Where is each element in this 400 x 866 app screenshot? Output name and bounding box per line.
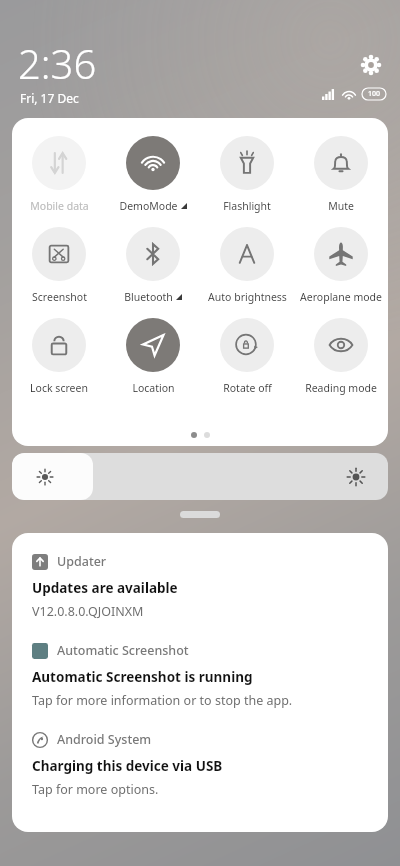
staticText: Updater [57,553,107,570]
staticText: Android System [57,731,152,748]
staticText: 2:36 [18,36,97,90]
button[interactable]: Mute [294,136,388,213]
staticText: Reading mode [305,381,377,395]
button[interactable]: Android System [12,709,388,798]
button[interactable]: Flashlight [200,136,294,213]
button[interactable]: Lock screen [12,318,106,395]
staticText: DemoMode [119,199,178,213]
button[interactable]: Reading mode [294,318,388,395]
staticText: Automatic Screenshot is running [32,668,253,686]
staticText: Flashlight [223,199,271,213]
button[interactable]: Rotate off [200,318,294,395]
staticText: Tap for more options. [32,781,159,798]
staticText: Screenshot [32,290,87,304]
staticText: 100 [368,89,381,99]
staticText: V12.0.8.0.QJOINXM [32,603,144,620]
button[interactable]: Settings [356,50,386,80]
button[interactable]: Brightness [12,453,388,500]
staticText: Mobile data [30,199,89,213]
staticText: Lock screen [30,381,88,395]
staticText: Location [132,381,175,395]
button[interactable]: Aeroplane mode [294,227,388,304]
button[interactable]: Screenshot [12,227,106,304]
button[interactable]: Auto brightness [200,227,294,304]
staticText: Auto brightness [208,290,287,304]
staticText: Fri, 17 Dec [20,90,79,106]
staticText: Automatic Screenshot [57,642,189,659]
button[interactable]: Mobile data [12,136,106,213]
staticText: Mute [328,199,354,213]
button[interactable]: Automatic Screenshot [12,620,388,709]
staticText: Charging this device via USB [32,757,223,775]
staticText: Tap for more information or to stop the … [32,692,293,709]
staticText: Rotate off [223,381,272,395]
staticText: Updates are available [32,579,178,597]
staticText: Aeroplane mode [300,290,382,304]
button[interactable]: Bluetooth [106,227,200,304]
button[interactable]: Location [106,318,200,395]
staticText: Bluetooth [124,290,173,304]
button[interactable]: DemoMode [106,136,200,213]
button[interactable]: Updater [12,533,388,620]
